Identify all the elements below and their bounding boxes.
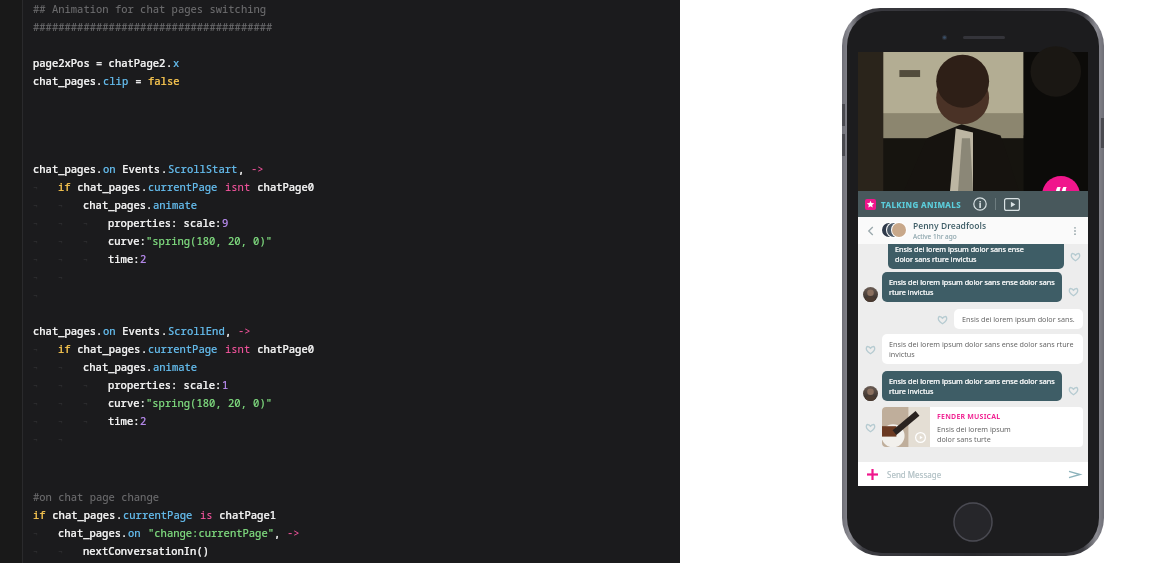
staticText: ¬ [58,416,63,427]
staticText: ¬ [33,200,38,211]
staticText: ¬ [33,380,38,391]
staticText: ¬ [83,254,88,265]
staticText: = [129,74,148,88]
staticText: false [148,74,180,88]
staticText: currentPage [148,180,218,194]
staticText: . [96,324,103,338]
staticText: Ensis dei lorem ipsum dolor sans ense do… [895,244,1024,264]
staticText: on [128,526,141,540]
staticText: Ensis dei lorem ipsum dolor sans ense do… [889,277,1055,297]
staticText: if [58,180,71,194]
button[interactable]: Ensis dei lorem ipsum dolor sans ense do… [882,272,1062,302]
button[interactable]: Back [858,217,1088,244]
button[interactable]: More options [1068,224,1082,238]
staticText: FENDER MUSICAL [937,412,1001,422]
staticText: . [161,162,168,176]
staticText: "change:currentPage" [148,526,274,540]
staticText: ¬ [33,528,38,539]
button[interactable]: Ensis dei lorem ipsum dolor sans ense do… [882,371,1062,401]
button[interactable]: Video [1004,198,1020,211]
staticText: animate [153,198,198,212]
staticText: Events [116,324,161,338]
staticText: 1 [222,378,229,392]
staticText: . [146,360,153,374]
button[interactable]: Quote [1042,176,1080,214]
staticText: . [96,74,103,88]
staticText: ¬ [83,380,88,391]
staticText: Events [116,162,161,176]
staticText: clip [103,74,129,88]
staticText: properties: scale: [108,378,222,392]
staticText: ## Animation for chat pages switching [33,2,267,16]
staticText: ¬ [58,200,63,211]
staticText: ¬ [33,236,38,247]
staticText: ¬ [83,218,88,229]
staticText: on [103,162,116,176]
staticText: . [146,198,153,212]
staticText: chat_pages [83,360,146,374]
staticText: ¬ [58,380,63,391]
button[interactable]: Info [973,197,987,211]
staticText: ScrollStart [168,162,238,176]
staticText: -> [251,162,264,176]
staticText: . [121,526,128,540]
staticText: ¬ [83,236,88,247]
staticText: animate [153,360,198,374]
staticText: . [141,342,148,356]
staticText: curve: [108,234,146,248]
staticText: currentPage [148,342,218,356]
staticText: "spring(180, 20, 0)" [146,396,272,410]
staticText: ¬ [33,182,38,193]
staticText: 2 [140,252,147,266]
staticText: on [103,324,116,338]
staticText: ¬ [33,344,38,355]
staticText: Ensis dei lorem ipsum dolor sans turte [937,424,1011,444]
staticText: . [166,56,173,70]
staticText: ¬ [33,272,38,283]
staticText: page2xPos = chatPage2 [33,56,166,70]
staticText: 2 [140,414,147,428]
staticText: ¬ [33,290,38,301]
staticText: time: [108,252,140,266]
staticText: -> [238,324,251,338]
staticText: , [274,526,287,540]
button[interactable]: Featured [865,199,876,210]
button[interactable]: FENDER MUSICAL [882,407,1083,447]
button[interactable]: Back [864,224,878,238]
staticText: Send Message [887,469,942,480]
staticText: , [225,324,238,338]
staticText: ¬ [33,416,38,427]
staticText: ¬ [58,236,63,247]
staticText: ¬ [58,434,63,445]
staticText: Active 1hr ago [913,232,957,241]
staticText: ¬ [58,254,63,265]
button[interactable]: Ensis dei lorem ipsum dolor sans. [954,309,1083,329]
staticText: isnt [225,180,251,194]
staticText: , [238,162,251,176]
staticText: ¬ [33,546,38,557]
button[interactable]: Ensis dei lorem ipsum dolor sans ense do… [888,244,1064,269]
staticText: ¬ [33,398,38,409]
staticText: . [96,162,103,176]
button[interactable]: Add attachment [865,467,879,481]
staticText: ¬ [33,218,38,229]
staticText: chat_pages [71,180,141,194]
staticText: Ensis dei lorem ipsum dolor sans. [962,314,1075,324]
staticText: ¬ [33,362,38,373]
staticText: if [33,508,46,522]
staticText: Ensis dei lorem ipsum dolor sans ense do… [889,376,1055,396]
staticText: ScrollEnd [168,324,225,338]
staticText: time: [108,414,140,428]
staticText: ###################################### [33,20,273,34]
staticText: 9 [222,216,229,230]
staticText: nextConversationIn() [83,544,209,558]
staticText: x [173,56,180,70]
staticText: ¬ [58,546,63,557]
button[interactable]: Ensis dei lorem ipsum dolor sans ense do… [882,334,1083,364]
button[interactable]: Send [1067,467,1081,481]
staticText: if [58,342,71,356]
